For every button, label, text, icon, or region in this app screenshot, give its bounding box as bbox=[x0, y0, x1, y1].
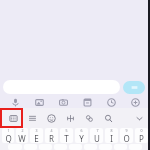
button[interactable]: Settings bbox=[23, 108, 42, 128]
button[interactable]: Camera bbox=[51, 96, 75, 108]
button[interactable]: GIF bbox=[99, 96, 123, 108]
staticText: Q bbox=[5, 133, 12, 143]
staticText: E bbox=[34, 133, 39, 143]
staticText: 1 bbox=[7, 128, 10, 133]
staticText: P bbox=[139, 133, 144, 143]
staticText: 0 bbox=[140, 128, 143, 133]
button[interactable]: Handwriting bbox=[80, 108, 99, 128]
button[interactable]: Voice bbox=[3, 96, 27, 108]
button[interactable]: 6 bbox=[75, 128, 88, 143]
button[interactable]: 5 bbox=[60, 128, 73, 143]
button[interactable]: Emoji bbox=[42, 108, 61, 128]
staticText: 2 bbox=[21, 128, 24, 133]
staticText: T bbox=[64, 133, 69, 143]
button[interactable]: Collapse bbox=[132, 108, 146, 128]
button[interactable]: 8 bbox=[105, 128, 118, 143]
staticText: W bbox=[18, 133, 26, 143]
button[interactable]: 9 bbox=[120, 128, 133, 143]
button[interactable]: Search bbox=[99, 108, 118, 128]
button[interactable]: 4 bbox=[45, 128, 58, 143]
button[interactable]: Gallery bbox=[27, 96, 51, 108]
staticText: I bbox=[110, 133, 113, 143]
button[interactable]: Translate bbox=[61, 108, 80, 128]
staticText: 4 bbox=[50, 128, 53, 133]
button[interactable]: 1 bbox=[2, 128, 14, 143]
staticText: O bbox=[123, 133, 130, 143]
staticText: 5 bbox=[65, 128, 68, 133]
staticText: Y bbox=[79, 133, 84, 143]
button[interactable]: Keyboard layout bbox=[4, 108, 23, 128]
button[interactable]: 3 bbox=[30, 128, 43, 143]
button[interactable]: 2 bbox=[16, 128, 28, 143]
button[interactable]: Sticker bbox=[75, 96, 99, 108]
staticText: 7 bbox=[96, 128, 99, 133]
staticText: 9 bbox=[125, 128, 128, 133]
staticText: 6 bbox=[80, 128, 83, 133]
staticText: 3 bbox=[35, 128, 38, 133]
button[interactable]: More bbox=[123, 96, 147, 108]
button[interactable]: 0 bbox=[135, 128, 148, 143]
button[interactable]: 7 bbox=[90, 128, 103, 143]
staticText: 8 bbox=[110, 128, 113, 133]
staticText: U bbox=[94, 133, 100, 143]
staticText: R bbox=[49, 133, 54, 143]
button[interactable]: Send bbox=[123, 81, 145, 94]
